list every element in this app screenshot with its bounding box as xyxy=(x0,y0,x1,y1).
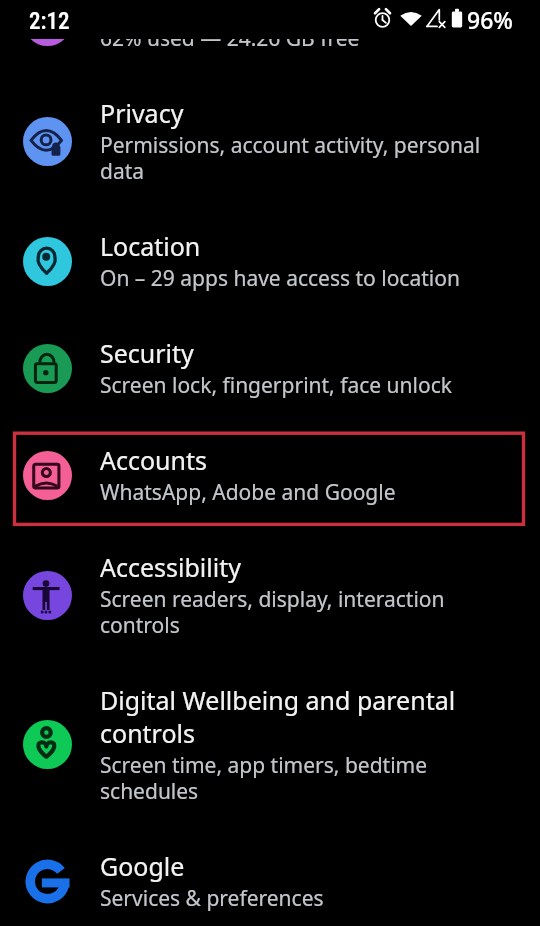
button[interactable]: Digital Wellbeing and parental controls xyxy=(0,660,540,826)
button[interactable]: Security xyxy=(0,313,540,420)
staticText: Google xyxy=(100,850,185,883)
button[interactable]: Accounts xyxy=(0,420,540,527)
button[interactable]: Location xyxy=(0,206,540,313)
button[interactable]: Storage xyxy=(0,0,540,73)
staticText: Screen lock, fingerprint, face unlock xyxy=(100,373,452,399)
staticText: Accessibility xyxy=(100,551,241,584)
staticText: WhatsApp, Adobe and Google xyxy=(100,480,396,506)
button[interactable]: Google xyxy=(0,826,540,926)
staticText: Location xyxy=(100,230,201,263)
staticText: On – 29 apps have access to location xyxy=(100,266,460,292)
button[interactable]: Privacy xyxy=(0,73,540,206)
staticText: Permissions, account activity, personal … xyxy=(100,133,496,185)
staticText: 62% used — 24.26 GB free xyxy=(100,26,360,52)
staticText: 96% xyxy=(467,4,513,35)
staticText: Accounts xyxy=(100,444,208,477)
staticText: Screen readers, display, interaction con… xyxy=(100,587,496,639)
button[interactable]: Accessibility xyxy=(0,527,540,660)
staticText: Privacy xyxy=(100,97,184,130)
staticText: Security xyxy=(100,337,194,370)
staticText: Services & preferences xyxy=(100,886,324,912)
staticText: 2:12 xyxy=(29,8,70,35)
staticText: Digital Wellbeing and parental controls xyxy=(100,684,496,750)
staticText: Screen time, app timers, bedtime schedul… xyxy=(100,753,496,805)
